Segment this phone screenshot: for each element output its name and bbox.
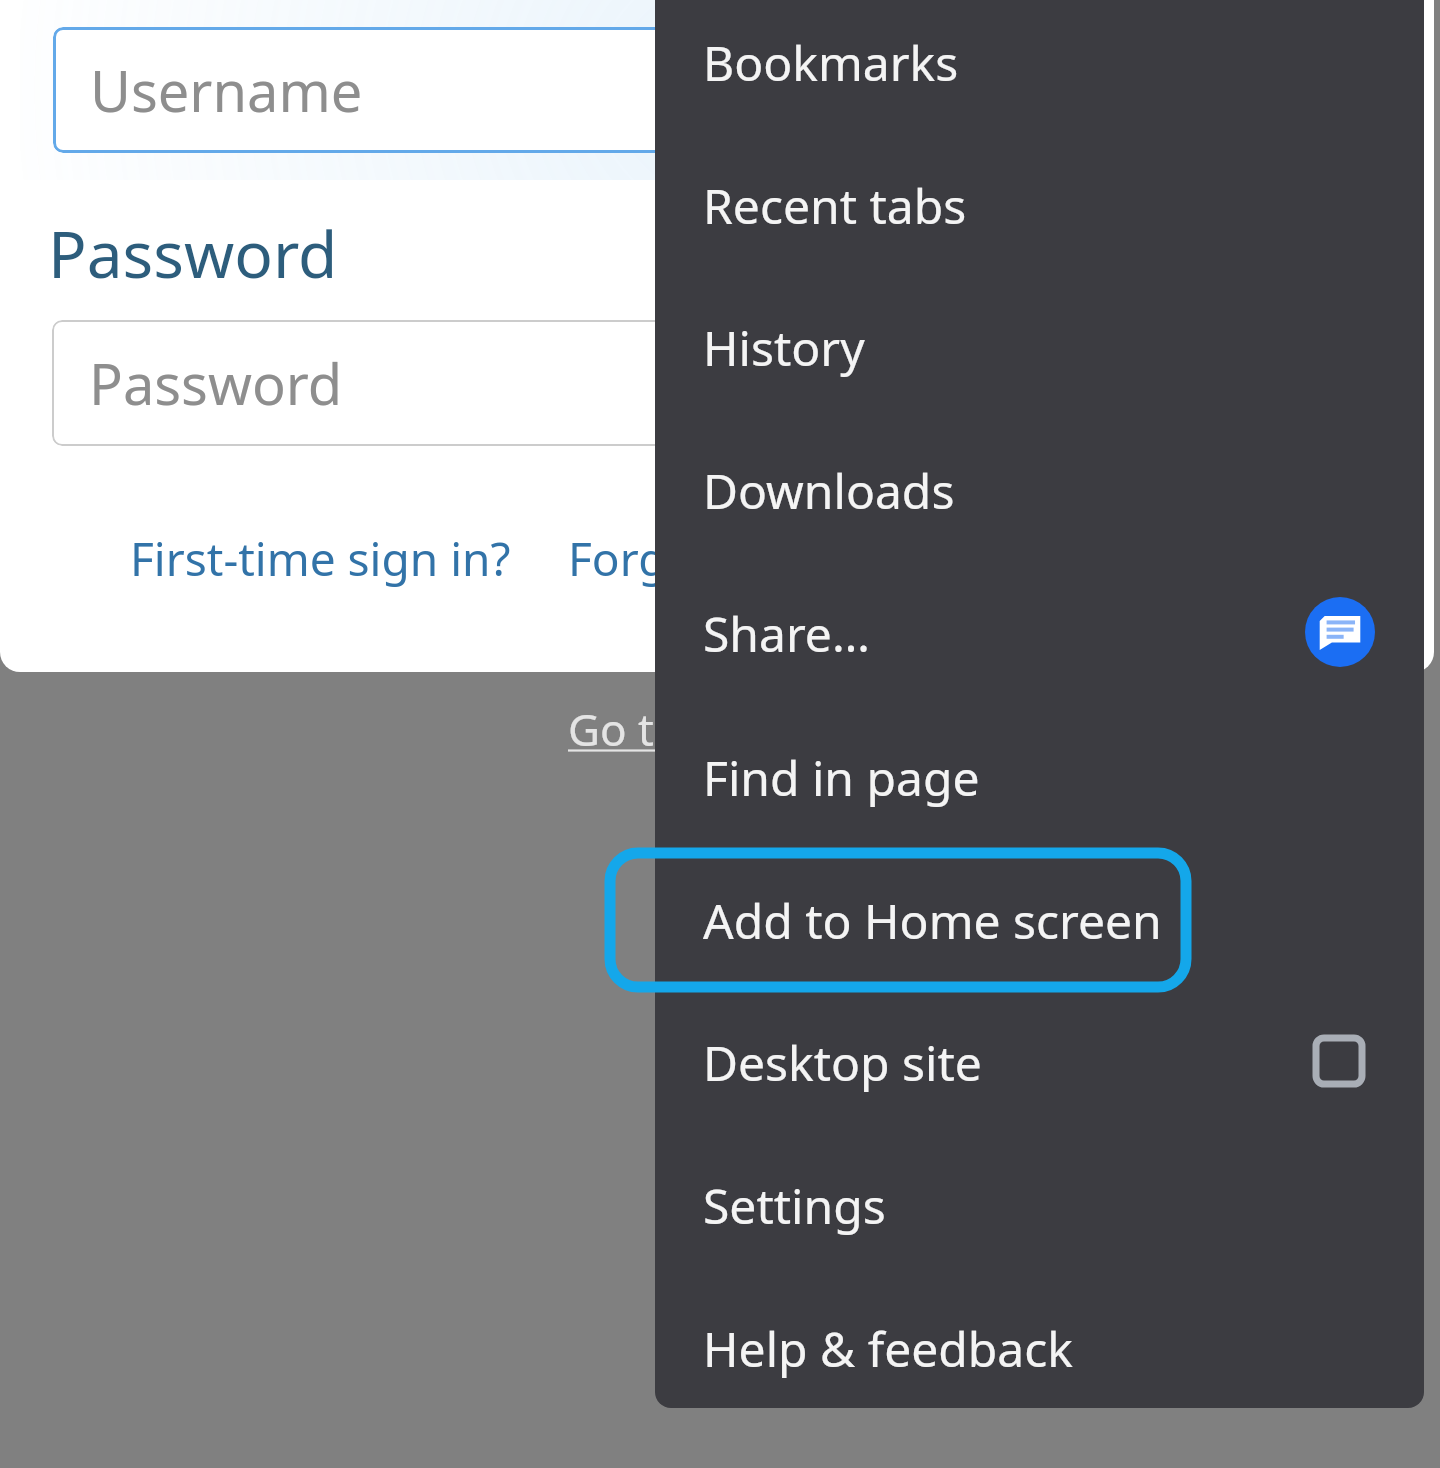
button[interactable]: Desktop site checkbox bbox=[1313, 1035, 1365, 1087]
button[interactable]: Share… bbox=[655, 562, 1424, 704]
staticText: Username bbox=[90, 52, 363, 128]
staticText: Find in page bbox=[703, 745, 980, 810]
staticText: Share… bbox=[703, 601, 870, 666]
button[interactable]: Downloads bbox=[655, 419, 1424, 561]
staticText: Settings bbox=[703, 1173, 886, 1238]
staticText: Password bbox=[48, 210, 338, 297]
staticText: Recent tabs bbox=[703, 173, 967, 238]
staticText: Password bbox=[89, 345, 343, 421]
staticText: Forgot password? bbox=[568, 527, 952, 590]
button[interactable]: Recent tabs bbox=[655, 134, 1424, 276]
button[interactable]: Go to full site bbox=[568, 696, 842, 762]
staticText: Bookmarks bbox=[703, 30, 959, 95]
staticText: First-time sign in? bbox=[130, 527, 511, 590]
button[interactable]: First-time sign in? bbox=[120, 522, 521, 594]
button[interactable]: Add to Home screen bbox=[655, 849, 1424, 991]
button[interactable]: History bbox=[655, 276, 1424, 418]
button[interactable]: Find in page bbox=[655, 706, 1424, 848]
button[interactable]: Help & feedback bbox=[655, 1277, 1424, 1419]
staticText: Go to full site bbox=[568, 699, 842, 759]
staticText: Desktop site bbox=[703, 1030, 982, 1095]
staticText: Add to Home screen bbox=[703, 888, 1162, 953]
button[interactable]: Settings bbox=[655, 1134, 1424, 1276]
button[interactable]: Messages bbox=[1305, 597, 1375, 667]
staticText: History bbox=[703, 315, 865, 380]
button[interactable]: Password bbox=[52, 320, 1390, 446]
button[interactable]: Desktop site bbox=[655, 991, 1424, 1133]
staticText: Help & feedback bbox=[703, 1316, 1073, 1381]
button[interactable]: Bookmarks bbox=[655, 0, 1424, 133]
button[interactable]: Username bbox=[53, 27, 1389, 153]
button[interactable]: Forgot password? bbox=[558, 522, 962, 594]
staticText: Downloads bbox=[703, 458, 955, 523]
